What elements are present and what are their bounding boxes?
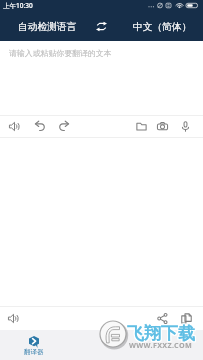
button[interactable]: Listen to translation <box>5 310 22 327</box>
staticText: 飞翔下载 <box>128 323 196 344</box>
button[interactable]: Redo <box>55 118 72 135</box>
button[interactable]: Share <box>154 310 171 327</box>
staticText: 自动检测语言 <box>18 21 77 33</box>
staticText: 上午10:30 <box>3 1 33 10</box>
button[interactable]: Documents <box>133 118 150 135</box>
button[interactable]: Undo <box>32 118 49 135</box>
staticText: WWW.FXXZ.COM <box>129 340 193 350</box>
staticText: 飞翔下载 <box>127 324 195 345</box>
staticText: 飞翔下载 <box>127 322 195 343</box>
staticText: 飞翔下载 <box>126 324 194 345</box>
button[interactable]: Camera <box>154 118 171 135</box>
staticText: 飞翔下载 <box>126 323 194 344</box>
staticText: 飞翔下载 <box>128 324 196 345</box>
button[interactable]: 中文（简体） <box>121 11 203 41</box>
staticText: 飞翔下载 <box>127 323 195 344</box>
button[interactable]: Swap languages <box>89 11 113 41</box>
button[interactable]: Copy <box>178 310 195 327</box>
staticText: 翻译器 <box>24 348 44 356</box>
button[interactable]: Microphone <box>177 118 194 135</box>
staticText: 飞翔下载 <box>128 322 196 343</box>
staticText: 飞翔下载 <box>126 322 194 343</box>
button[interactable]: 翻译器 <box>0 330 67 360</box>
button[interactable]: 自动检测语言 <box>5 11 89 41</box>
staticText: 中文（简体） <box>133 21 192 33</box>
staticText: 请输入或粘贴你要翻译的文本 <box>9 48 112 58</box>
button[interactable]: Listen <box>6 118 23 135</box>
